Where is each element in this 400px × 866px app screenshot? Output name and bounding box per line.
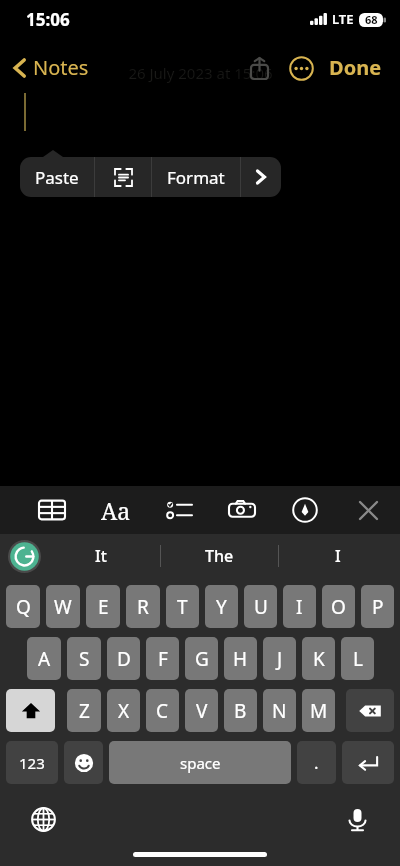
button[interactable]: T — [166, 585, 199, 628]
staticText: The — [205, 545, 234, 567]
staticText: 15:06 — [26, 8, 70, 31]
button[interactable]: Scan text — [95, 157, 151, 197]
button[interactable]: X — [107, 689, 140, 732]
button[interactable]: Delete — [346, 689, 394, 732]
staticText: It — [95, 545, 107, 567]
button[interactable]: space — [109, 741, 291, 784]
button[interactable]: A — [27, 637, 61, 680]
staticText: P — [372, 594, 384, 620]
button[interactable]: Close keyboard — [346, 488, 390, 532]
button[interactable]: The — [161, 534, 278, 578]
staticText: L — [353, 646, 363, 672]
button[interactable]: M — [302, 689, 335, 732]
button[interactable]: Share — [241, 50, 277, 86]
button[interactable]: Z — [67, 689, 101, 732]
staticText: A — [38, 646, 51, 672]
button[interactable]: Table — [30, 488, 74, 532]
staticText: B — [234, 698, 247, 724]
staticText: G — [195, 646, 209, 672]
button[interactable]: Aa — [94, 488, 138, 532]
staticText: R — [137, 594, 149, 620]
button[interactable]: D — [107, 637, 140, 680]
button[interactable]: Shift — [6, 689, 55, 732]
staticText: 68 — [365, 12, 378, 27]
button[interactable]: Done — [325, 48, 386, 87]
button[interactable]: H — [224, 637, 257, 680]
staticText: Y — [216, 594, 227, 620]
staticText: . — [314, 751, 319, 774]
staticText: C — [156, 698, 169, 724]
staticText: space — [180, 753, 221, 773]
button[interactable]: More — [241, 157, 281, 197]
button[interactable]: Camera — [220, 488, 264, 532]
button[interactable]: G — [185, 637, 218, 680]
staticText: Notes — [33, 54, 89, 81]
staticText: Paste — [35, 166, 79, 189]
staticText: I — [335, 545, 341, 567]
staticText: D — [117, 646, 131, 672]
staticText: 26 July 2023 at 15:06 — [128, 63, 273, 83]
staticText: V — [196, 698, 208, 724]
button[interactable]: Markup — [283, 488, 327, 532]
button[interactable]: Q — [6, 585, 40, 628]
staticText: K — [313, 646, 325, 672]
staticText: S — [79, 646, 90, 672]
staticText: 123 — [19, 753, 45, 773]
button[interactable]: . — [297, 741, 336, 784]
staticText: LTE — [332, 10, 354, 28]
button[interactable]: F — [146, 637, 179, 680]
button[interactable]: K — [302, 637, 335, 680]
button[interactable]: Change keyboard — [26, 802, 60, 836]
button[interactable]: O — [322, 585, 355, 628]
staticText: I — [296, 594, 303, 620]
button[interactable]: W — [46, 585, 80, 628]
staticText: Done — [329, 54, 382, 81]
staticText: J — [277, 646, 283, 672]
button[interactable]: B — [224, 689, 257, 732]
button[interactable]: E — [86, 585, 120, 628]
staticText: E — [98, 594, 109, 620]
button[interactable]: Dictate — [340, 802, 374, 836]
button[interactable]: P — [361, 585, 394, 628]
staticText: W — [54, 594, 72, 620]
staticText: O — [331, 594, 346, 620]
button[interactable]: I — [279, 534, 396, 578]
staticText: M — [310, 698, 328, 724]
staticText: U — [254, 594, 268, 620]
button[interactable]: J — [263, 637, 296, 680]
button[interactable]: Format — [152, 157, 240, 197]
button[interactable]: I — [283, 585, 316, 628]
button[interactable]: N — [263, 689, 296, 732]
button[interactable]: V — [185, 689, 218, 732]
staticText: Aa — [101, 495, 131, 526]
button[interactable]: Checklist — [157, 488, 201, 532]
button[interactable]: L — [341, 637, 374, 680]
staticText: F — [158, 646, 168, 672]
button[interactable]: It — [42, 534, 160, 578]
button[interactable]: Grammarly — [6, 538, 42, 574]
staticText: Q — [16, 594, 31, 620]
staticText: N — [272, 698, 287, 724]
button[interactable]: Emoji — [64, 741, 103, 784]
button[interactable]: More options — [283, 50, 319, 86]
staticText: X — [118, 698, 130, 724]
staticText: T — [177, 594, 188, 620]
button[interactable]: C — [146, 689, 179, 732]
button[interactable]: Notes — [10, 50, 93, 85]
button[interactable]: 123 — [6, 741, 58, 784]
staticText: Z — [79, 698, 90, 724]
button[interactable]: Return — [342, 741, 394, 784]
button[interactable]: R — [126, 585, 160, 628]
staticText: H — [233, 646, 248, 672]
button[interactable]: Paste — [20, 157, 94, 197]
button[interactable]: Y — [205, 585, 238, 628]
button[interactable]: U — [244, 585, 277, 628]
staticText: Format — [167, 166, 225, 189]
button[interactable]: S — [67, 637, 101, 680]
